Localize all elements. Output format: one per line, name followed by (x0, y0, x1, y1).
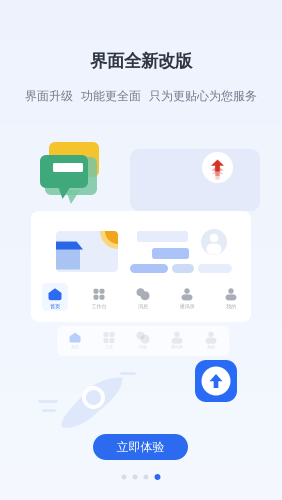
staticText: 我的 (207, 344, 215, 349)
staticText: 工作台 (91, 303, 106, 310)
staticText: 界面升级 功能更全面 只为更贴心为您服务 (25, 89, 257, 103)
staticText: 工作 (105, 344, 113, 349)
button[interactable]: 我的 (209, 286, 253, 312)
staticText: 界面全新改版 (90, 50, 192, 72)
button[interactable]: 首页 (33, 286, 77, 312)
staticText: 消息 (139, 344, 147, 349)
staticText: 首页 (71, 344, 79, 349)
button[interactable]: 工作台 (77, 286, 121, 312)
button[interactable]: 通讯录 (165, 286, 209, 312)
staticText: 通讯录 (179, 303, 194, 310)
staticText: 立即体验 (116, 440, 164, 454)
button[interactable]: 消息 (121, 286, 165, 312)
button[interactable]: 立即体验 (93, 434, 188, 460)
staticText: 消息 (138, 303, 148, 310)
staticText: 首页 (50, 303, 60, 310)
staticText: 通讯录 (171, 344, 183, 349)
staticText: 我的 (226, 303, 236, 310)
